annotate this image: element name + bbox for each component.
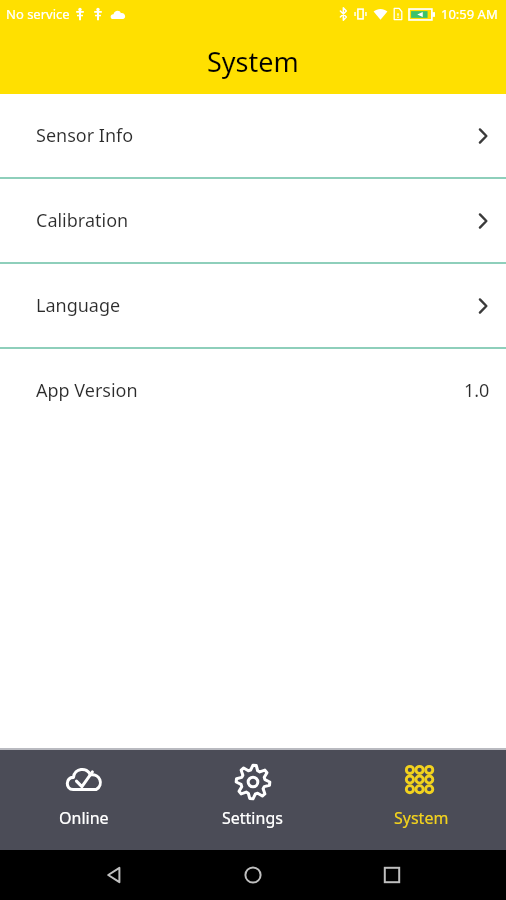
button[interactable]: Calibration <box>0 179 506 262</box>
button[interactable]: App Version <box>0 349 506 432</box>
staticText: Settings <box>222 807 283 829</box>
staticText: System <box>394 807 449 829</box>
button[interactable]: Online <box>0 750 168 850</box>
staticText: System <box>207 43 299 80</box>
button[interactable]: System <box>337 750 506 850</box>
button[interactable]: Back <box>91 851 139 899</box>
staticText: 10:59 AM <box>441 5 498 23</box>
staticText: 1.0 <box>464 378 490 403</box>
button[interactable]: Home <box>229 851 277 899</box>
button[interactable]: Settings <box>168 750 337 850</box>
staticText: Calibration <box>36 208 129 233</box>
staticText: Sensor Info <box>36 123 134 148</box>
button[interactable]: Language <box>0 264 506 347</box>
button[interactable]: Recents <box>368 851 416 899</box>
staticText: Online <box>59 807 109 829</box>
staticText: App Version <box>36 378 138 403</box>
button[interactable]: Sensor Info <box>0 94 506 177</box>
staticText: No service <box>6 5 70 23</box>
staticText: Language <box>36 293 121 318</box>
